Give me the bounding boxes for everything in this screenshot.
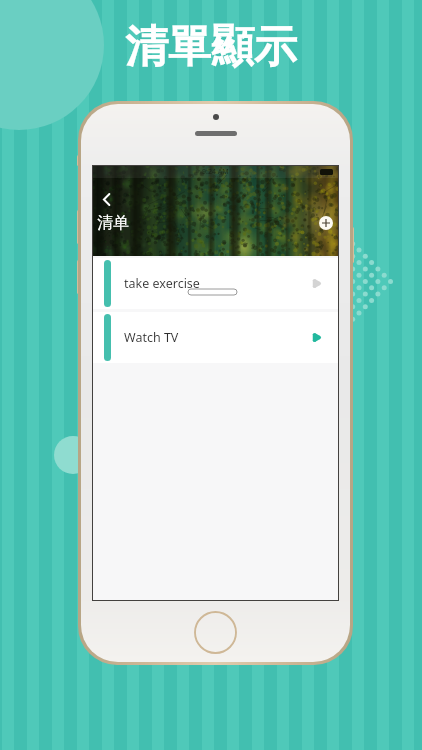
staticText: Watch TV <box>124 329 179 346</box>
button[interactable]: Add <box>319 216 333 230</box>
staticText: take exercise <box>124 275 200 292</box>
staticText: 清單顯示 <box>125 20 297 74</box>
button[interactable]: Watch TV <box>93 312 338 363</box>
button[interactable]: take exercise <box>93 258 338 309</box>
button[interactable]: Back <box>95 188 117 210</box>
staticText: 9:24 AM <box>202 167 229 177</box>
staticText: 清单 <box>97 213 129 233</box>
